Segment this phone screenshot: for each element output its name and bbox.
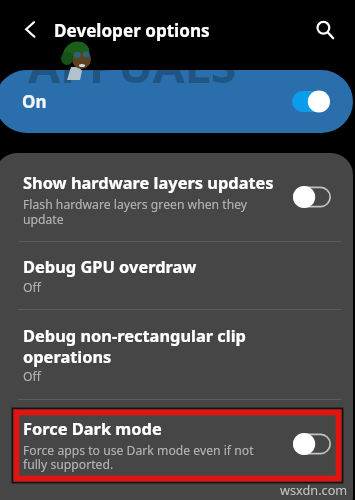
button[interactable]: Back bbox=[13, 13, 47, 46]
button[interactable]: Debug non-rectangular clip bbox=[0, 311, 355, 400]
staticText: fully supported. bbox=[23, 456, 114, 473]
button[interactable]: Developer options on bbox=[292, 90, 330, 113]
staticText: Developer options bbox=[54, 19, 210, 42]
button[interactable]: Show hardware layers updates bbox=[0, 153, 355, 241]
staticText: On bbox=[22, 90, 47, 113]
staticText: Show hardware layers updates bbox=[23, 171, 274, 193]
staticText: APPUALS bbox=[28, 33, 237, 96]
button[interactable]: Toggle off bbox=[293, 432, 331, 456]
staticText: wsxdn.com bbox=[280, 481, 348, 498]
staticText: Flash hardware layers green when they bbox=[23, 196, 248, 213]
button[interactable]: Force Dark mode bbox=[0, 401, 355, 489]
staticText: Debug GPU overdraw bbox=[23, 255, 197, 277]
staticText: operations bbox=[23, 345, 112, 367]
staticText: Force apps to use Dark mode even if not bbox=[23, 442, 254, 459]
staticText: Debug non-rectangular clip bbox=[23, 324, 246, 346]
button[interactable]: On bbox=[0, 70, 353, 133]
button[interactable]: Toggle off bbox=[293, 185, 331, 209]
staticText: update bbox=[23, 211, 64, 228]
staticText: Off bbox=[23, 279, 41, 296]
button[interactable]: Search bbox=[307, 12, 340, 44]
button[interactable]: Debug GPU overdraw bbox=[0, 242, 355, 310]
staticText: Off bbox=[23, 368, 41, 385]
staticText: Force Dark mode bbox=[23, 417, 162, 439]
